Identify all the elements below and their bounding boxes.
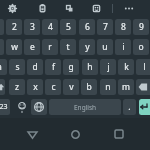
button[interactable]: Emoji <box>15 99 29 115</box>
button[interactable]: i <box>115 39 131 55</box>
staticText: k <box>124 61 129 73</box>
button[interactable]: Backspace <box>136 79 150 95</box>
button[interactable]: Translate <box>63 2 76 15</box>
button[interactable]: Change keyboard <box>31 99 47 115</box>
staticText: 6 <box>85 21 90 33</box>
staticText: t <box>66 41 70 53</box>
button[interactable]: j <box>100 59 116 75</box>
staticText: u <box>102 41 108 53</box>
button[interactable]: r <box>42 39 58 55</box>
button[interactable]: w <box>6 39 22 55</box>
button[interactable]: l <box>136 59 150 75</box>
staticText: 5 <box>66 21 71 33</box>
button[interactable]: Home <box>63 122 87 146</box>
staticText: m <box>122 81 130 93</box>
button[interactable]: More options <box>122 2 136 15</box>
staticText: h <box>87 61 93 73</box>
staticText: c <box>51 81 56 93</box>
button[interactable]: Recent apps <box>107 122 131 146</box>
button[interactable]: n <box>100 79 116 95</box>
button[interactable]: 9 <box>133 19 149 35</box>
button[interactable]: z <box>9 79 25 95</box>
button[interactable]: t <box>60 39 76 55</box>
staticText: 9 <box>139 21 144 33</box>
button[interactable]: q <box>0 39 4 55</box>
staticText: l <box>143 61 146 73</box>
staticText: 4 <box>48 21 53 33</box>
staticText: English <box>74 103 97 112</box>
button[interactable]: k <box>118 59 134 75</box>
button[interactable]: v <box>63 79 79 95</box>
button[interactable]: b <box>81 79 97 95</box>
button[interactable]: 4 <box>42 19 58 35</box>
button[interactable]: Shift <box>0 79 5 95</box>
button[interactable]: d <box>27 59 43 75</box>
button[interactable]: s <box>9 59 25 75</box>
staticText: 2 <box>12 21 17 33</box>
staticText: y <box>85 41 90 53</box>
staticText: i <box>122 41 125 53</box>
button[interactable]: x <box>27 79 43 95</box>
button[interactable]: Stickers <box>90 2 103 15</box>
staticText: 7 <box>103 21 108 33</box>
button[interactable]: o <box>133 39 149 55</box>
button[interactable]: 2 <box>6 19 22 35</box>
staticText: o <box>138 41 144 53</box>
staticText: d <box>32 61 38 73</box>
staticText: w <box>11 41 18 53</box>
button[interactable]: 1 <box>0 19 4 35</box>
button[interactable]: g <box>63 59 79 75</box>
button[interactable]: e <box>24 39 40 55</box>
staticText: f <box>52 61 55 73</box>
staticText: e <box>30 41 35 53</box>
staticText: a <box>0 61 2 73</box>
button[interactable]: Enter <box>139 99 150 115</box>
staticText: 8 <box>121 21 126 33</box>
button[interactable]: ?123 <box>0 99 10 115</box>
button[interactable]: Back <box>20 122 44 146</box>
staticText: ?123 <box>0 102 8 112</box>
staticText: b <box>86 81 92 93</box>
staticText: z <box>15 81 19 93</box>
staticText: v <box>69 81 74 93</box>
button[interactable]: y <box>79 39 95 55</box>
button[interactable]: u <box>97 39 113 55</box>
button[interactable]: Clipboard <box>36 2 49 15</box>
staticText: . <box>128 101 131 113</box>
button[interactable]: 7 <box>97 19 113 35</box>
button[interactable]: Settings <box>6 2 19 15</box>
button[interactable]: English <box>49 99 121 115</box>
staticText: s <box>15 61 20 73</box>
staticText: n <box>105 81 111 93</box>
button[interactable]: c <box>45 79 61 95</box>
button[interactable]: m <box>118 79 134 95</box>
staticText: r <box>48 41 52 53</box>
button[interactable]: 3 <box>24 19 40 35</box>
button[interactable]: h <box>82 59 98 75</box>
button[interactable]: 5 <box>60 19 76 35</box>
staticText: x <box>33 81 38 93</box>
button[interactable]: a <box>0 59 7 75</box>
staticText: g <box>68 61 74 73</box>
button[interactable]: 8 <box>115 19 131 35</box>
button[interactable]: f <box>45 59 61 75</box>
button[interactable]: . <box>123 99 136 115</box>
staticText: j <box>107 61 110 73</box>
button[interactable]: 6 <box>79 19 95 35</box>
staticText: 3 <box>30 21 35 33</box>
